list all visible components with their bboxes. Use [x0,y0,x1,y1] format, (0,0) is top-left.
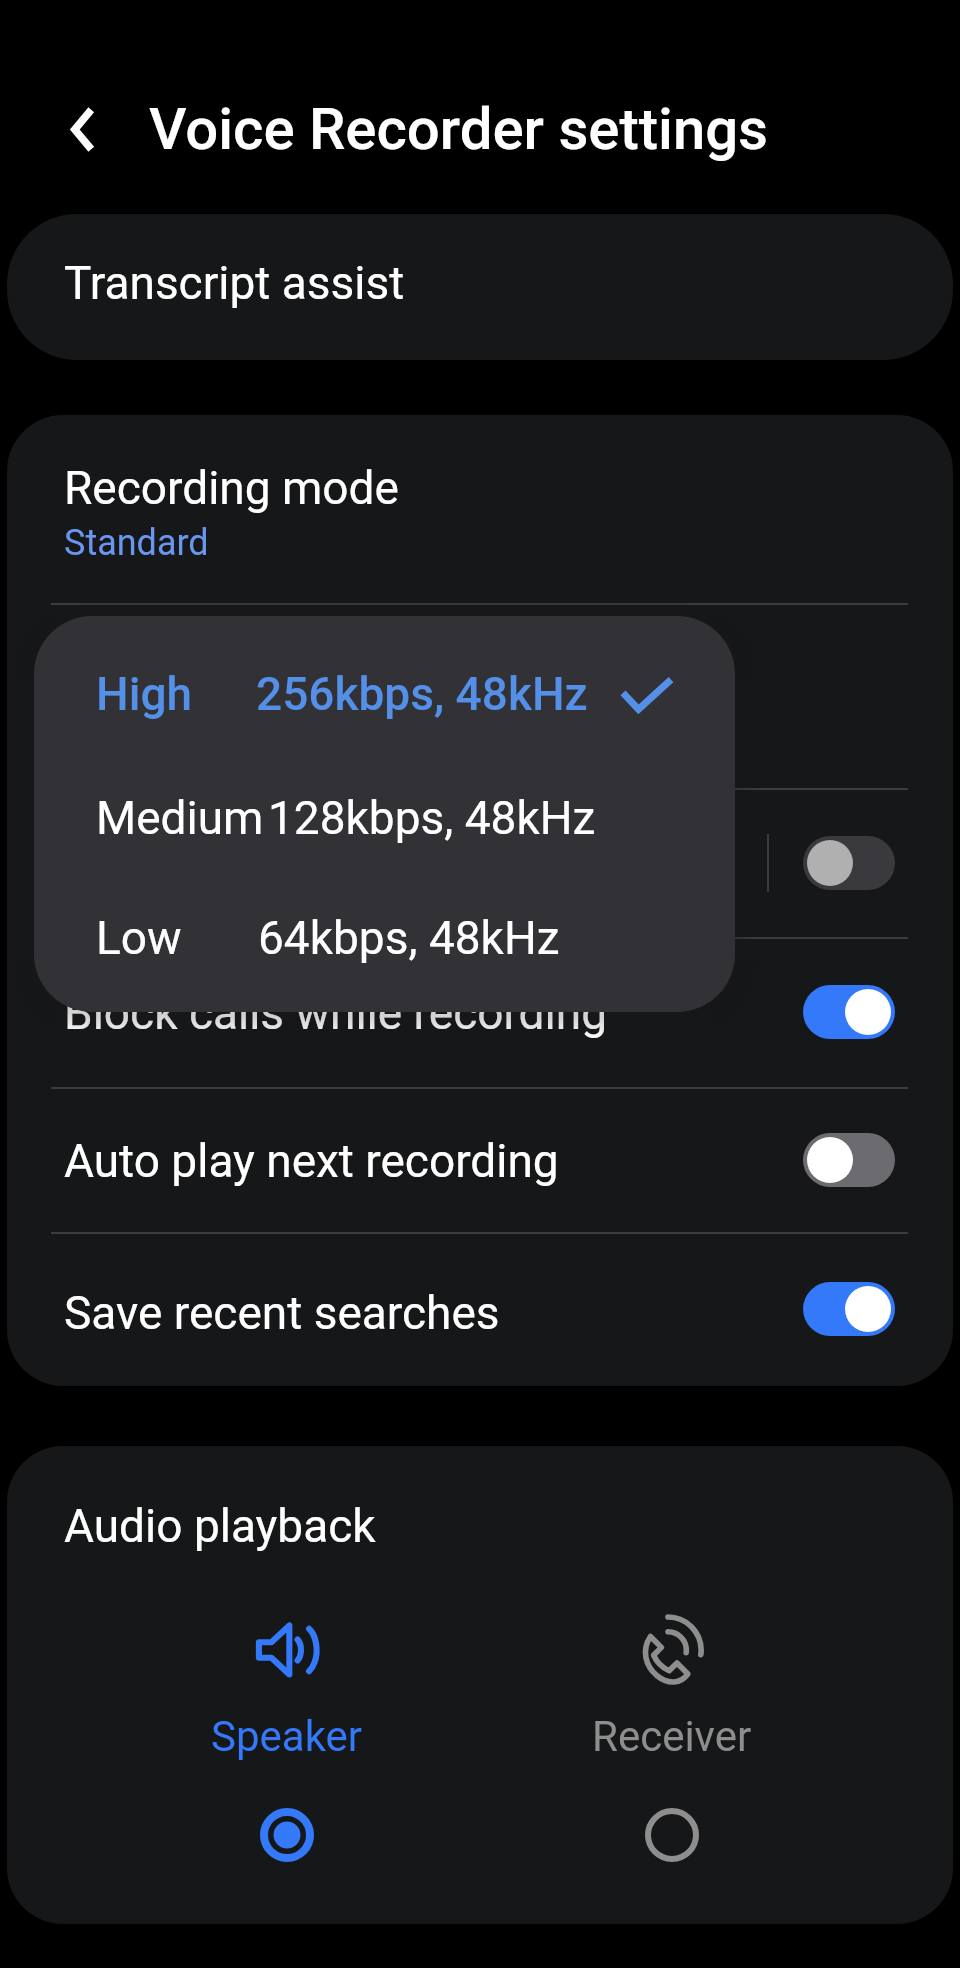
button[interactable]: Record in stereo [7,788,953,937]
staticText: Voice Recorder settings [149,95,769,163]
button[interactable]: High [34,634,735,754]
staticText: Low [96,911,182,965]
staticText: High [96,667,193,721]
staticText: Audio playback [64,1499,376,1553]
button[interactable]: Transcript assist [7,214,953,360]
staticText: Transcript assist [64,256,405,310]
staticText: Medium [96,791,264,845]
button[interactable]: Receiver [542,1586,802,1886]
staticText: Recording quality [64,645,418,699]
button[interactable]: On [803,985,895,1039]
staticText: Speaker [211,1712,363,1761]
staticText: Recording mode [64,461,399,515]
button[interactable]: Off [803,1133,895,1187]
staticText: Auto play next recording [64,1134,559,1188]
staticText: High [64,706,139,748]
staticText: 256kbps, 48kHz [256,667,588,721]
button[interactable]: On [803,1282,895,1336]
button[interactable]: Medium [34,758,735,878]
button[interactable]: Speaker [157,1586,417,1886]
button[interactable]: Back [38,88,128,170]
staticText: Save recent searches [64,1286,500,1340]
staticText: 64kbps, 48kHz [258,911,560,965]
button[interactable]: Recording quality [64,645,418,748]
button[interactable]: Low [34,878,735,998]
button[interactable]: Save recent searches [7,1232,953,1386]
staticText: Standard [64,522,209,564]
staticText: 128kbps, 48kHz [268,791,596,845]
staticText: Block calls while recording [64,986,607,1040]
button[interactable]: Auto play next recording [7,1087,953,1232]
staticText: Receiver [592,1712,752,1761]
button[interactable]: Recording mode [64,461,399,564]
button[interactable]: Block calls while recording [7,937,953,1087]
button[interactable]: Off [803,836,895,890]
